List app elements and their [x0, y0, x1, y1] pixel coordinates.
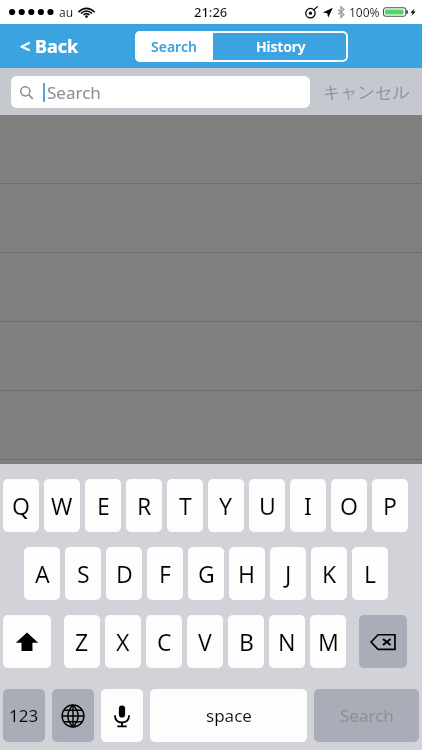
button[interactable]: Dictate: [101, 689, 143, 742]
button[interactable]: L: [352, 547, 388, 600]
button[interactable]: space: [150, 689, 307, 742]
button[interactable]: I: [290, 479, 326, 532]
staticText: R: [137, 490, 152, 521]
staticText: space: [206, 704, 252, 727]
staticText: M: [318, 626, 339, 657]
button[interactable]: Y: [208, 479, 244, 532]
staticText: T: [179, 490, 192, 521]
button[interactable]: F: [147, 547, 183, 600]
staticText: キャンセル: [323, 82, 410, 103]
button[interactable]: M: [310, 615, 346, 668]
staticText: Y: [219, 490, 233, 521]
button[interactable]: W: [44, 479, 80, 532]
button[interactable]: A: [24, 547, 60, 600]
staticText: E: [97, 490, 110, 521]
button[interactable]: Z: [64, 615, 100, 668]
button[interactable]: J: [270, 547, 306, 600]
staticText: W: [51, 490, 73, 521]
staticText: Search: [340, 704, 394, 727]
button[interactable]: C: [146, 615, 182, 668]
button[interactable]: Search: [314, 689, 419, 742]
staticText: K: [322, 558, 337, 589]
button[interactable]: Q: [3, 479, 39, 532]
staticText: D: [116, 558, 133, 589]
button[interactable]: 123: [3, 689, 45, 742]
staticText: 100%: [349, 4, 380, 20]
button[interactable]: R: [126, 479, 162, 532]
button[interactable]: Search: [135, 31, 213, 62]
button[interactable]: K: [311, 547, 347, 600]
staticText: < Back: [20, 34, 79, 59]
staticText: U: [259, 490, 276, 521]
button[interactable]: E: [85, 479, 121, 532]
staticText: G: [198, 558, 215, 589]
staticText: Search: [151, 37, 197, 56]
staticText: Z: [75, 626, 89, 657]
staticText: 123: [9, 704, 39, 727]
staticText: P: [383, 490, 397, 521]
button[interactable]: S: [65, 547, 101, 600]
staticText: History: [256, 37, 306, 56]
staticText: au: [59, 4, 74, 20]
staticText: L: [364, 558, 377, 589]
button[interactable]: T: [167, 479, 203, 532]
staticText: I: [304, 490, 312, 521]
button[interactable]: キャンセル: [322, 82, 411, 103]
button[interactable]: G: [188, 547, 224, 600]
button[interactable]: History: [213, 31, 348, 62]
staticText: C: [157, 626, 172, 657]
staticText: X: [116, 626, 130, 657]
staticText: F: [159, 558, 171, 589]
button[interactable]: < Back: [12, 28, 87, 65]
staticText: V: [198, 626, 212, 657]
staticText: N: [278, 626, 296, 657]
staticText: Q: [12, 490, 30, 521]
staticText: J: [285, 558, 292, 589]
button[interactable]: O: [331, 479, 367, 532]
staticText: A: [35, 558, 50, 589]
button[interactable]: Delete: [359, 615, 407, 668]
staticText: O: [340, 490, 358, 521]
staticText: S: [77, 558, 90, 589]
staticText: B: [239, 626, 254, 657]
button[interactable]: N: [269, 615, 305, 668]
button[interactable]: Change keyboard: [52, 689, 94, 742]
button[interactable]: D: [106, 547, 142, 600]
staticText: Search: [47, 81, 101, 104]
button[interactable]: Shift: [3, 615, 51, 668]
button[interactable]: X: [105, 615, 141, 668]
staticText: 21:26: [194, 3, 228, 21]
button[interactable]: U: [249, 479, 285, 532]
button[interactable]: V: [187, 615, 223, 668]
button[interactable]: P: [372, 479, 408, 532]
staticText: H: [238, 558, 256, 589]
button[interactable]: B: [228, 615, 264, 668]
button[interactable]: H: [229, 547, 265, 600]
button[interactable]: Search: [11, 76, 310, 108]
